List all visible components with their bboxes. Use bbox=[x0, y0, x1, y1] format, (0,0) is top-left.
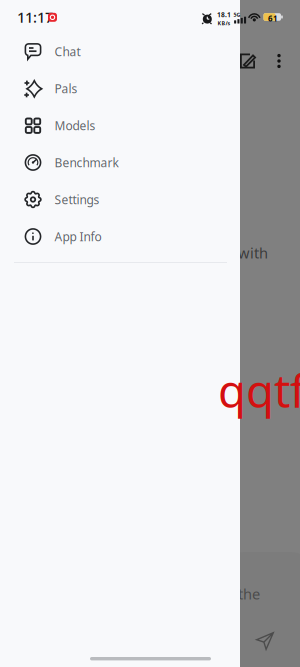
staticText: 61 bbox=[268, 13, 278, 24]
button[interactable]: Settings bbox=[0, 181, 240, 218]
staticText: Pals bbox=[54, 80, 77, 96]
staticText: qqtf bbox=[218, 360, 300, 420]
staticText: Models bbox=[54, 117, 95, 133]
button[interactable]: More options bbox=[267, 48, 291, 74]
staticText: 11:17 bbox=[17, 7, 53, 27]
staticText: 5G bbox=[233, 11, 240, 18]
button[interactable]: Models bbox=[0, 107, 240, 144]
staticText: with bbox=[238, 243, 268, 262]
button[interactable]: Send bbox=[252, 628, 278, 654]
button[interactable]: Benchmark bbox=[0, 144, 240, 181]
staticText: KB/s bbox=[217, 20, 230, 27]
staticText: Chat bbox=[54, 43, 80, 59]
staticText: 18.1 bbox=[217, 10, 231, 19]
button[interactable]: Pals bbox=[0, 70, 240, 107]
button[interactable]: Chat bbox=[0, 33, 240, 70]
button[interactable]: New chat bbox=[235, 48, 261, 74]
staticText: App Info bbox=[54, 228, 101, 244]
staticText: the bbox=[238, 584, 260, 603]
staticText: Settings bbox=[54, 191, 99, 207]
button[interactable]: App Info bbox=[0, 218, 240, 255]
staticText: Benchmark bbox=[54, 154, 118, 170]
